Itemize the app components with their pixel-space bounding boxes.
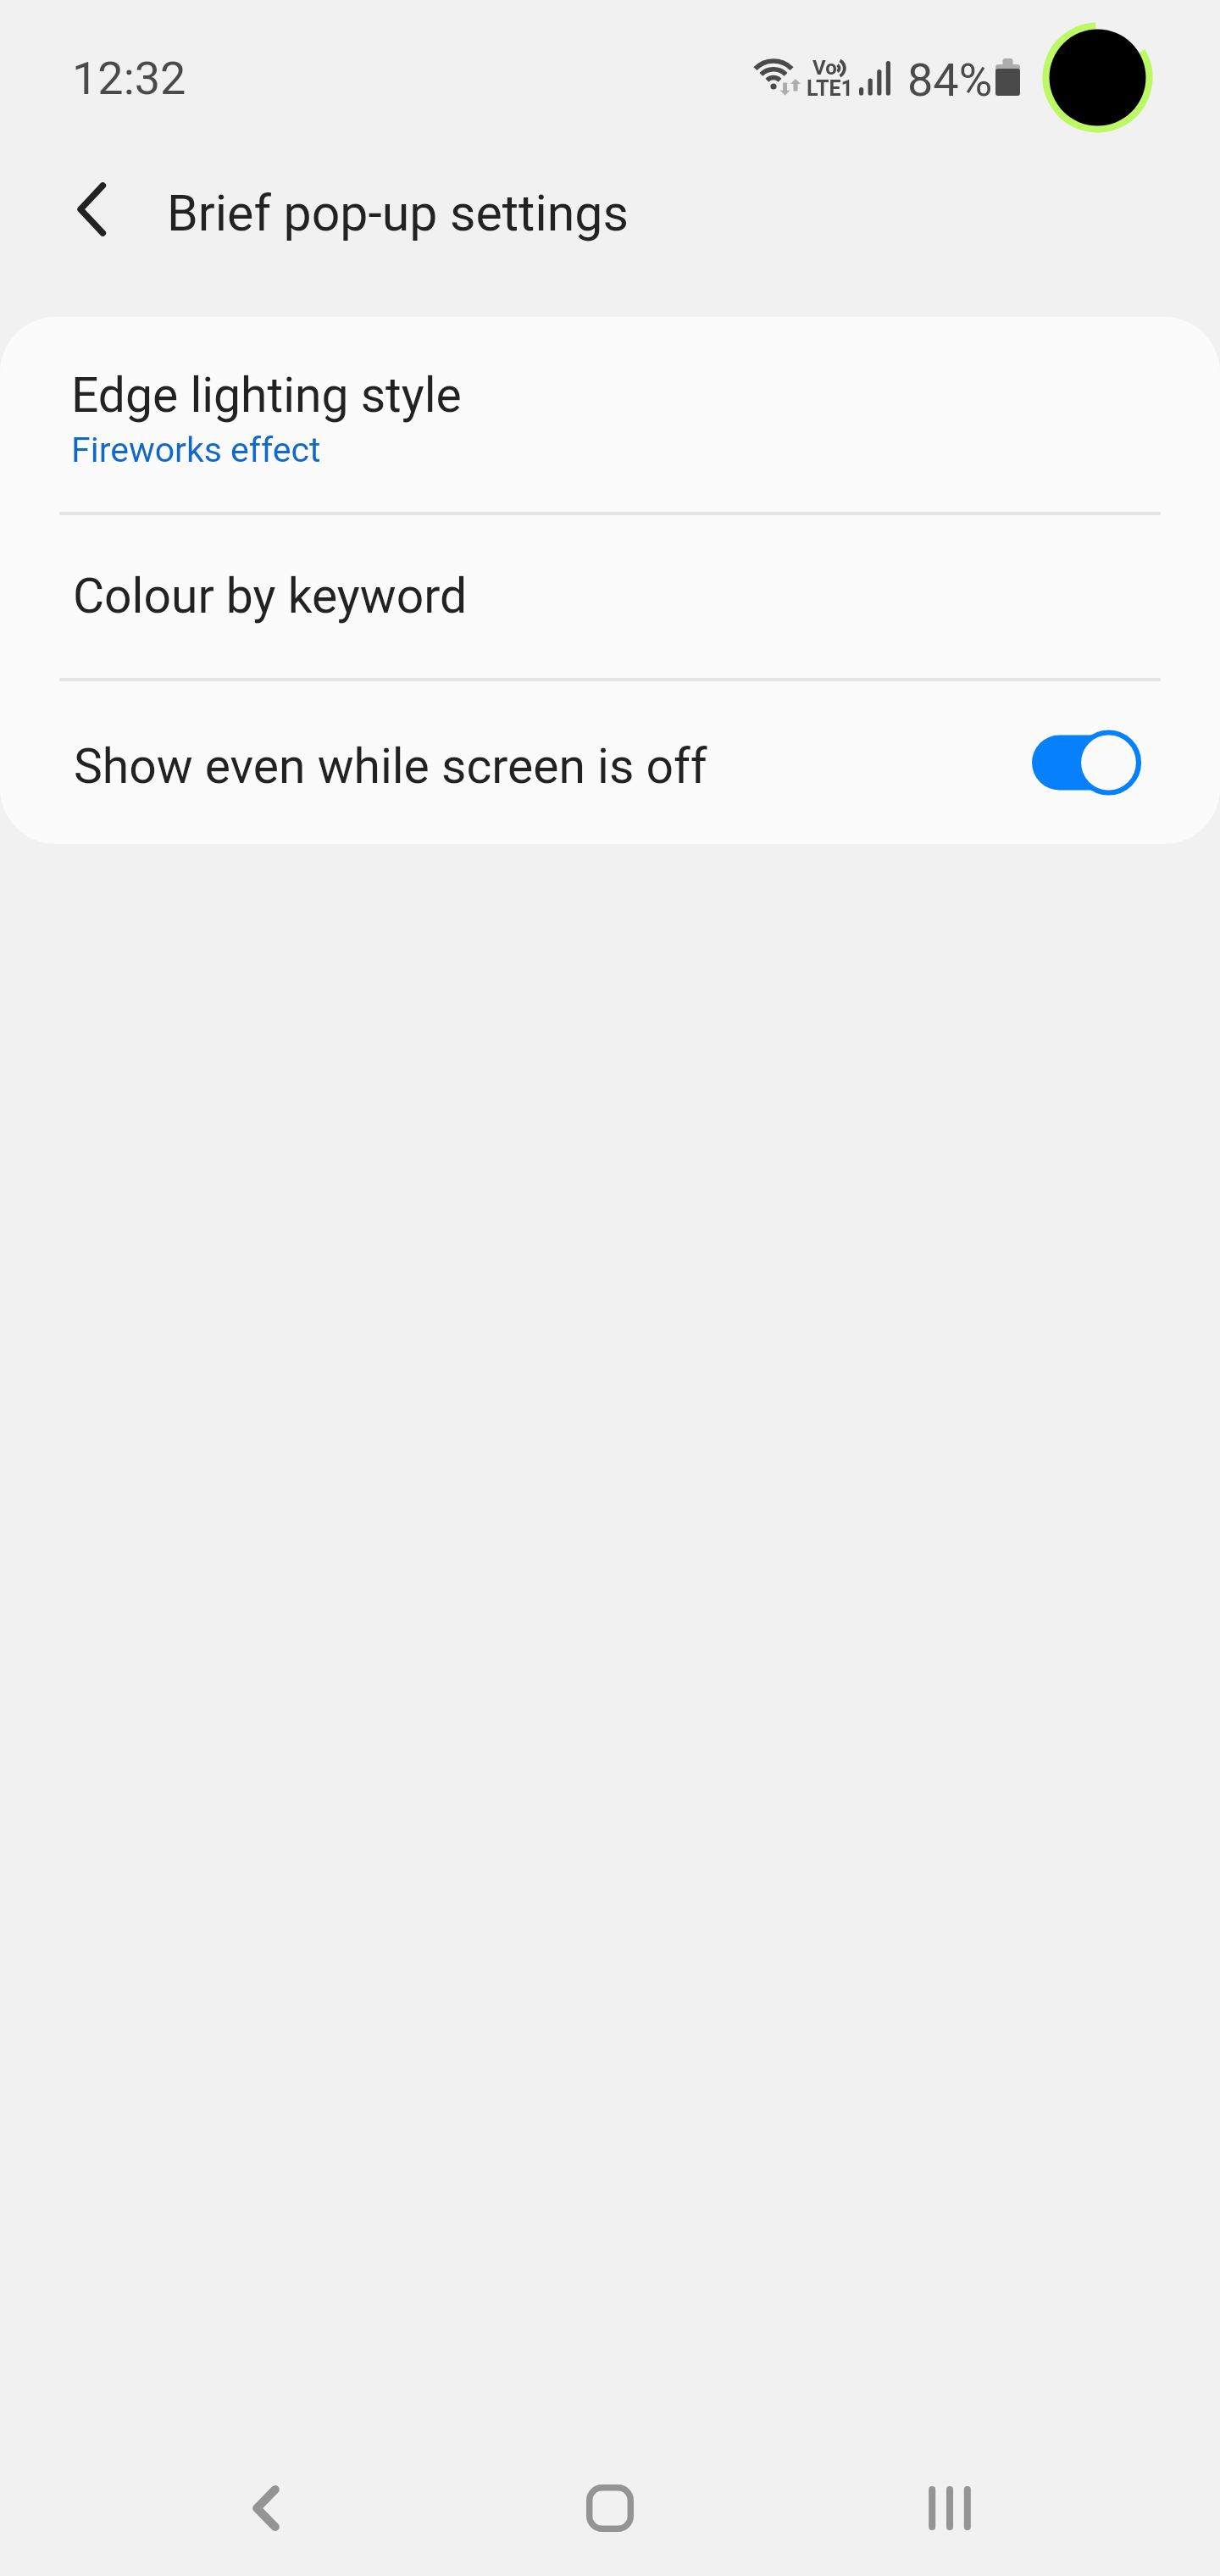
staticText: 12:32	[72, 52, 186, 105]
button[interactable]: Navigate up	[30, 148, 152, 270]
button[interactable]: Edge lighting style	[0, 317, 1220, 512]
staticText: 84%	[907, 53, 993, 107]
button[interactable]: Show even while screen is off	[0, 681, 1220, 844]
staticText: Brief pop-up settings	[167, 184, 629, 242]
staticText: Fireworks effect	[71, 430, 321, 470]
staticText: Edge lighting style	[71, 367, 462, 424]
staticText: Show even while screen is off	[74, 738, 707, 795]
staticText: LTE1	[807, 76, 853, 101]
button[interactable]: Back	[198, 2440, 334, 2576]
button[interactable]: Home	[542, 2440, 678, 2576]
staticText: Vo	[812, 56, 837, 80]
button[interactable]: Recent apps	[879, 2440, 1014, 2576]
button[interactable]: Colour by keyword	[0, 515, 1220, 678]
button[interactable]: Show even while screen is off, on	[1012, 703, 1155, 822]
staticText: Colour by keyword	[73, 568, 468, 625]
